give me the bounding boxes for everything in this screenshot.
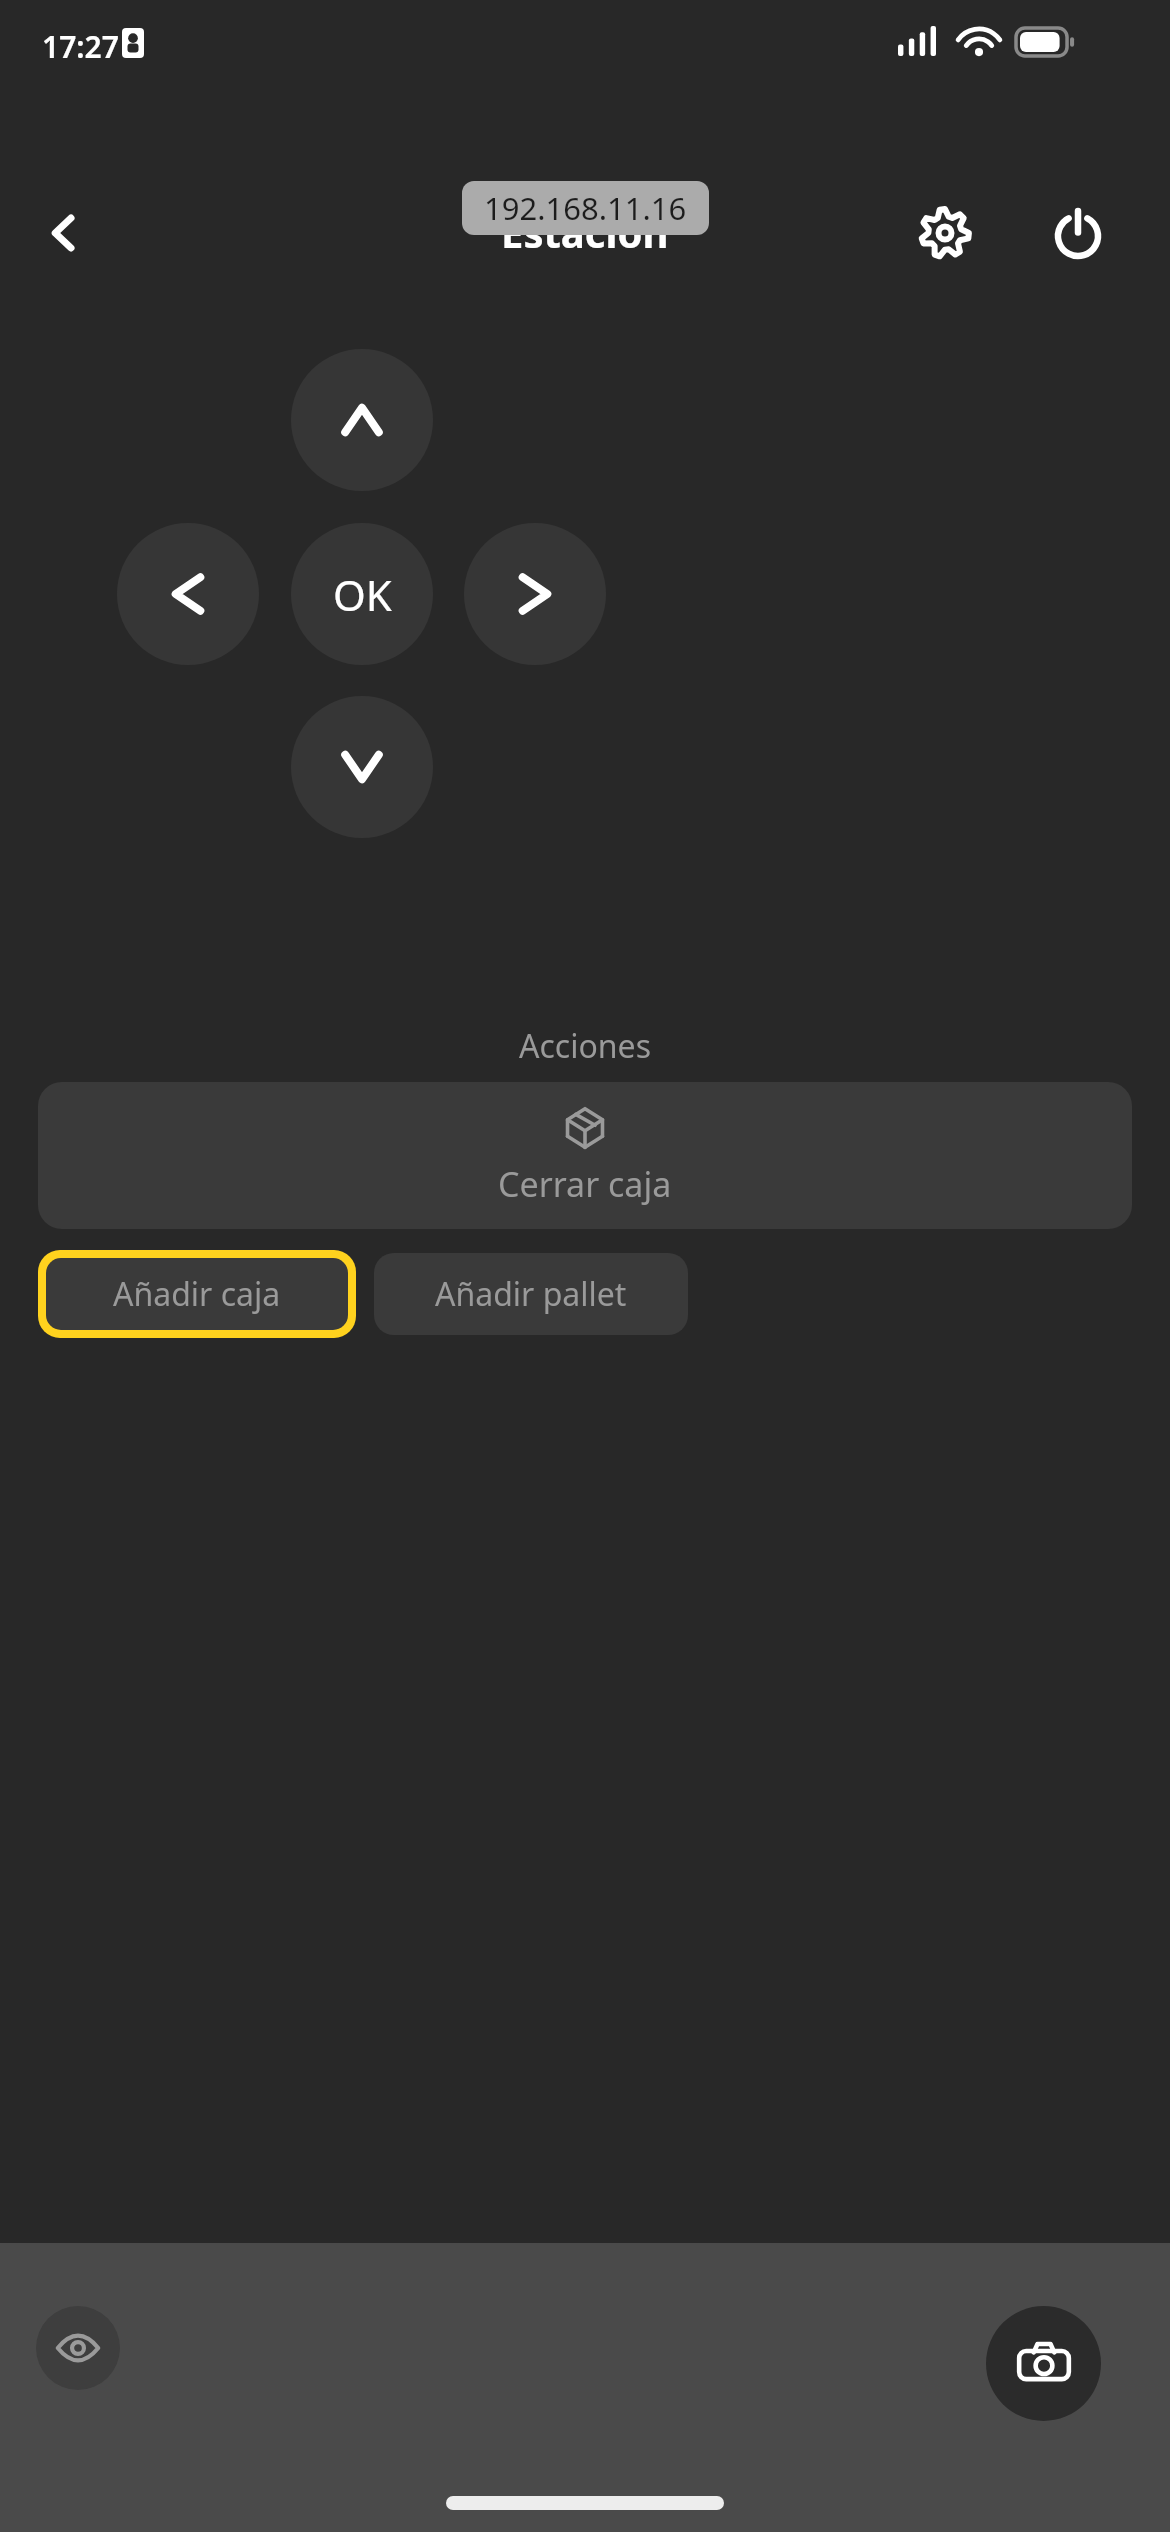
button[interactable]: Añadir pallet [374, 1253, 688, 1335]
staticText: 17:27 [42, 26, 119, 67]
button[interactable]: Back [14, 183, 114, 283]
staticText: Cerrar caja [498, 1161, 672, 1207]
button[interactable]: Power [1028, 183, 1128, 283]
staticText: Estación [501, 205, 669, 259]
button[interactable]: OK [291, 523, 433, 665]
staticText: Añadir pallet [435, 1272, 627, 1316]
button[interactable]: Settings [895, 183, 995, 283]
button[interactable]: Down [291, 696, 433, 838]
button[interactable]: Cerrar caja [38, 1082, 1132, 1229]
button[interactable]: Preview [36, 2306, 120, 2390]
staticText: OK [333, 566, 392, 623]
staticText: Acciones [519, 1024, 651, 1068]
button[interactable]: Right [464, 523, 606, 665]
button[interactable]: Up [291, 349, 433, 491]
button[interactable]: Camera [986, 2306, 1101, 2421]
button[interactable]: Añadir caja [38, 1250, 356, 1338]
staticText: 192.168.11.16 [484, 187, 687, 229]
button[interactable]: Left [117, 523, 259, 665]
staticText: Añadir caja [113, 1272, 281, 1316]
button[interactable]: 192.168.11.16 [462, 181, 709, 235]
